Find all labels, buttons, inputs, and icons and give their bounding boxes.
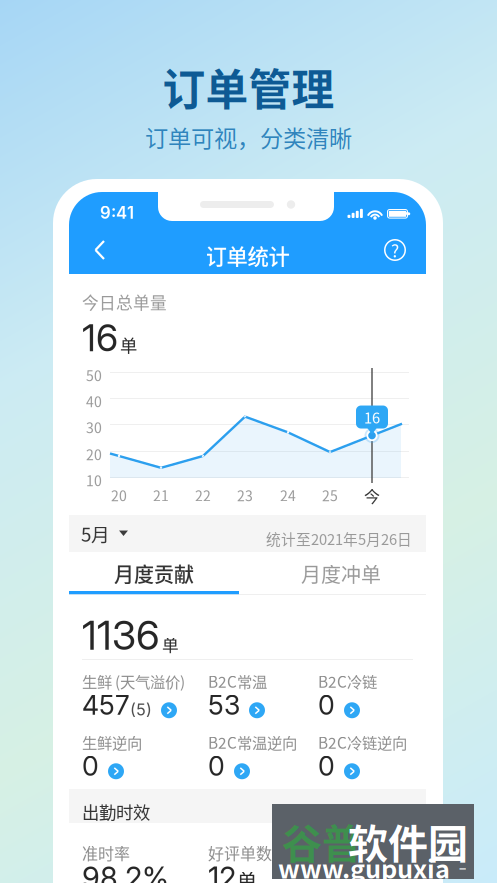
- button[interactable]: B2C冷链: [318, 670, 430, 714]
- staticText: 0: [318, 750, 335, 782]
- staticText: 457: [82, 689, 130, 721]
- staticText: 25: [322, 485, 338, 505]
- staticText: 月度贡献: [114, 559, 194, 588]
- staticText: 0: [82, 750, 99, 782]
- staticText: 单: [162, 632, 179, 656]
- button[interactable]: Back: [83, 228, 117, 272]
- button[interactable]: B2C常温逆向: [208, 731, 320, 775]
- staticText: B2C冷链逆向: [318, 731, 407, 753]
- button[interactable]: 生鲜 (天气溢价): [82, 670, 194, 714]
- staticText: 单: [120, 332, 137, 357]
- staticText: www.gupuxiazai.com: [278, 849, 475, 883]
- staticText: 98.2%: [82, 860, 169, 883]
- staticText: 16: [82, 315, 118, 360]
- staticText: 21: [153, 485, 169, 505]
- staticText: 22: [195, 485, 211, 505]
- button[interactable]: 生鲜逆向: [82, 731, 194, 775]
- button[interactable]: B2C常温: [208, 670, 320, 714]
- staticText: 订单统计: [205, 240, 289, 271]
- staticText: 0: [208, 750, 225, 782]
- staticText: 好评单数: [208, 841, 272, 864]
- staticText: 5月: [81, 520, 110, 547]
- staticText: 统计至2021年5月26日: [266, 528, 412, 549]
- staticText: 24: [280, 485, 296, 505]
- staticText: 53: [208, 689, 240, 721]
- staticText: ?: [391, 237, 399, 263]
- staticText: B2C常温: [208, 670, 267, 692]
- button[interactable]: B2C冷链逆向: [318, 731, 430, 775]
- staticText: 单: [237, 865, 257, 883]
- staticText: 10: [86, 470, 102, 490]
- staticText: 50: [86, 365, 102, 385]
- staticText: 订单管理: [162, 56, 334, 118]
- staticText: B2C常温逆向: [208, 731, 297, 753]
- button[interactable]: 月度冲单: [69, 553, 239, 594]
- button[interactable]: 月度贡献: [69, 553, 239, 594]
- staticText: 准时率: [82, 841, 130, 864]
- staticText: 0: [318, 689, 335, 721]
- staticText: 出勤时效: [82, 799, 150, 824]
- staticText: 生鲜逆向: [82, 731, 142, 753]
- button[interactable]: Help: [378, 228, 412, 272]
- staticText: 40: [86, 391, 102, 411]
- staticText: 今日总单量: [82, 290, 167, 314]
- staticText: 16: [364, 406, 380, 428]
- staticText: 9:41: [100, 202, 134, 223]
- staticText: 20: [86, 444, 102, 464]
- staticText: 1136: [82, 611, 160, 659]
- staticText: 生鲜 (天气溢价): [82, 670, 185, 692]
- staticText: 20: [111, 485, 127, 505]
- staticText: 12: [208, 860, 236, 883]
- staticText: 23: [237, 485, 253, 505]
- staticText: 30: [86, 417, 102, 437]
- staticText: 今: [364, 484, 380, 507]
- staticText: 月度冲单: [301, 559, 381, 588]
- staticText: B2C冷链: [318, 670, 377, 692]
- button[interactable]: 5月: [69, 515, 142, 552]
- staticText: 软件园: [348, 812, 468, 870]
- staticText: 订单可视，分类清晰: [145, 120, 352, 154]
- staticText: 谷普: [282, 812, 362, 870]
- staticText: (5): [130, 700, 152, 719]
